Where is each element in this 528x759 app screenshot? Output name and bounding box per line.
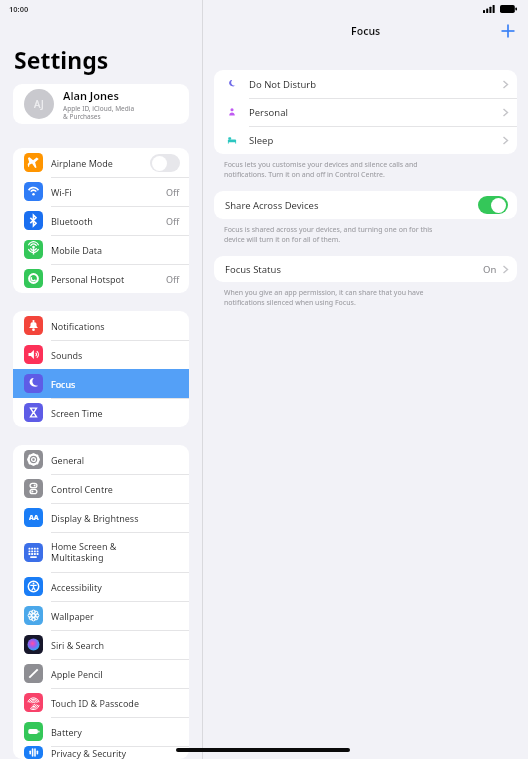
staticText: Focus is shared across your devices, and…: [224, 225, 433, 245]
button[interactable]: Add Focus: [496, 19, 520, 43]
button[interactable]: Notifications: [13, 311, 189, 340]
staticText: AA: [29, 513, 39, 523]
button[interactable]: Toggle off: [150, 154, 180, 172]
button[interactable]: Siri & Search: [13, 630, 189, 659]
staticText: Touch ID & Passcode: [51, 697, 180, 709]
button[interactable]: Accessibility: [13, 572, 189, 601]
button[interactable]: Touch ID & Passcode: [13, 688, 189, 717]
button[interactable]: Focus: [13, 369, 189, 398]
button[interactable]: Airplane Mode: [13, 148, 189, 177]
staticText: Settings: [14, 44, 109, 75]
staticText: Focus: [351, 24, 381, 38]
staticText: General: [51, 454, 180, 466]
button[interactable]: Screen Time: [13, 398, 189, 427]
staticText: Off: [166, 273, 180, 285]
button[interactable]: Mobile Data: [13, 235, 189, 264]
staticText: Sounds: [51, 349, 180, 361]
staticText: Display & Brightness: [51, 512, 180, 524]
staticText: Share Across Devices: [225, 199, 478, 212]
staticText: When you give an app permission, it can …: [224, 288, 424, 308]
button[interactable]: Sounds: [13, 340, 189, 369]
staticText: Wallpaper: [51, 610, 180, 622]
staticText: On: [483, 263, 497, 276]
button[interactable]: Wallpaper: [13, 601, 189, 630]
button[interactable]: Sleep: [214, 126, 517, 154]
staticText: Airplane Mode: [51, 157, 148, 169]
button[interactable]: Battery: [13, 717, 189, 746]
button[interactable]: Do Not Disturb: [214, 70, 517, 98]
button[interactable]: Bluetooth: [13, 206, 189, 235]
staticText: Screen Time: [51, 407, 180, 419]
button[interactable]: General: [13, 445, 189, 474]
staticText: 10:00: [9, 4, 29, 14]
staticText: Personal: [249, 106, 503, 119]
button[interactable]: Wi-Fi: [13, 177, 189, 206]
staticText: Control Centre: [51, 483, 180, 495]
staticText: Focus Status: [225, 263, 483, 276]
staticText: Sleep: [249, 134, 503, 147]
staticText: Bluetooth: [51, 215, 166, 227]
staticText: Accessibility: [51, 581, 180, 593]
button[interactable]: Toggle on: [478, 196, 508, 214]
staticText: Alan Jones: [63, 88, 119, 103]
button[interactable]: Apple Pencil: [13, 659, 189, 688]
staticText: Wi-Fi: [51, 186, 166, 198]
staticText: Focus lets you customise your devices an…: [224, 160, 418, 180]
staticText: Do Not Disturb: [249, 78, 503, 91]
staticText: Mobile Data: [51, 244, 180, 256]
staticText: Notifications: [51, 320, 180, 332]
button[interactable]: Focus Status: [214, 256, 517, 282]
staticText: Apple ID, iCloud, Media & Purchases: [63, 104, 135, 121]
button[interactable]: Privacy & Security: [13, 746, 189, 759]
button[interactable]: AA: [13, 503, 189, 532]
staticText: Siri & Search: [51, 639, 180, 651]
staticText: Focus: [51, 378, 180, 390]
button[interactable]: Personal Hotspot: [13, 264, 189, 293]
staticText: Personal Hotspot: [51, 273, 166, 285]
staticText: Battery: [51, 726, 180, 738]
staticText: Off: [166, 215, 180, 227]
button[interactable]: Control Centre: [13, 474, 189, 503]
staticText: Home Screen & Multitasking: [51, 540, 180, 564]
button[interactable]: Share Across Devices: [214, 191, 517, 219]
staticText: AJ: [34, 97, 44, 111]
button[interactable]: Home Screen & Multitasking: [13, 532, 189, 572]
staticText: Apple Pencil: [51, 668, 180, 680]
button[interactable]: Personal: [214, 98, 517, 126]
staticText: Off: [166, 186, 180, 198]
button[interactable]: AJ: [13, 84, 189, 124]
staticText: Privacy & Security: [51, 747, 180, 759]
